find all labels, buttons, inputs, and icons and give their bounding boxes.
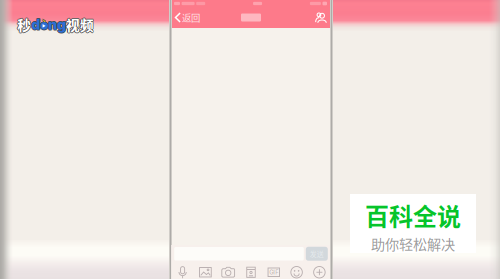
staticText: d [30, 16, 39, 33]
button[interactable]: Card [240, 265, 262, 279]
staticText: d [32, 16, 41, 33]
staticText: 视频 [66, 15, 94, 35]
button[interactable]: 返回 [172, 7, 206, 28]
staticText: ng [47, 16, 65, 33]
button[interactable]: Photos [194, 265, 217, 279]
staticText: 助你轻松解决 [371, 233, 455, 254]
staticText: d [31, 17, 40, 34]
staticText: ng [49, 16, 67, 33]
button[interactable]: GIF [262, 265, 285, 279]
staticText: d [31, 16, 40, 33]
button[interactable]: 发送 [306, 247, 328, 261]
staticText: 视频 [67, 15, 95, 34]
staticText: d [31, 15, 40, 32]
staticText: ng [48, 16, 66, 33]
button[interactable]: Emoji [285, 265, 308, 279]
staticText: 秒 [17, 14, 31, 34]
staticText: 秒 [16, 15, 30, 34]
staticText: 百科全说 [365, 198, 461, 232]
staticText: 返回 [182, 11, 200, 24]
staticText: 视频 [66, 14, 94, 34]
staticText: 秒 [18, 15, 32, 34]
button[interactable]: Group members [309, 7, 330, 28]
button[interactable]: More [308, 265, 331, 279]
staticText: GIF [269, 269, 278, 276]
button[interactable]: Camera [217, 265, 240, 279]
staticText: 秒 [17, 15, 31, 35]
staticText: ng [48, 17, 66, 34]
staticText: 发送 [310, 249, 324, 259]
button[interactable]: Voice message [171, 265, 194, 279]
staticText: ng [48, 15, 66, 32]
staticText: 视频 [65, 15, 93, 34]
staticText: 视频 [66, 15, 94, 34]
staticText: 秒 [17, 15, 31, 34]
